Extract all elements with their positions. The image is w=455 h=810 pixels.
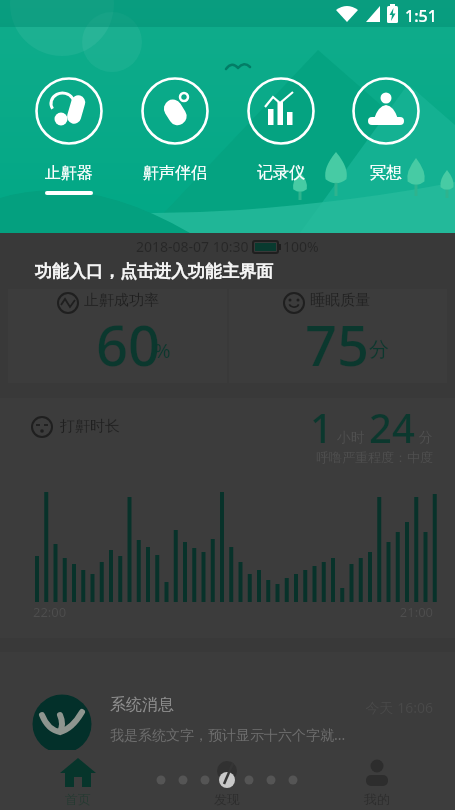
staticText: 止鼾器 xyxy=(45,163,93,183)
button[interactable] xyxy=(197,750,257,810)
button[interactable]: 睡眠质量 xyxy=(229,289,447,383)
staticText: 鼾声伴侣 xyxy=(143,163,207,183)
button[interactable] xyxy=(48,750,108,810)
button[interactable] xyxy=(135,95,215,185)
staticText: 21:00 xyxy=(399,603,433,621)
staticText: 止鼾成功率 xyxy=(84,291,159,310)
staticText: 功能入口，点击进入功能主界面 xyxy=(35,261,273,282)
button[interactable] xyxy=(29,95,109,185)
staticText: 75 xyxy=(305,306,370,382)
staticText: % xyxy=(154,337,171,364)
button[interactable]: 系统消息 xyxy=(0,652,455,750)
staticText: 打鼾时长 xyxy=(60,417,120,436)
button[interactable] xyxy=(241,95,321,185)
button[interactable]: 止鼾成功率 xyxy=(8,289,227,383)
staticText: 100% xyxy=(283,237,319,256)
staticText: 睡眠质量 xyxy=(310,291,370,310)
staticText: 分 xyxy=(415,427,433,446)
staticText: 呼噜严重程度：中度 xyxy=(316,449,433,465)
staticText: 今天 16:06 xyxy=(365,698,433,717)
button[interactable] xyxy=(346,95,426,185)
staticText: 24 xyxy=(369,400,415,454)
staticText: 分 xyxy=(369,337,389,362)
staticText: 我是系统文字，预计显示十六个字就... xyxy=(110,725,346,744)
staticText: 小时 xyxy=(333,427,369,446)
staticText: 发现 xyxy=(214,791,240,807)
staticText: 首页 xyxy=(65,791,91,807)
staticText: 60 xyxy=(96,306,161,382)
button[interactable] xyxy=(347,750,407,810)
staticText: 我的 xyxy=(364,791,390,807)
staticText: 记录仪 xyxy=(257,163,305,183)
staticText: 1 xyxy=(310,400,333,454)
staticText: 22:00 xyxy=(33,603,67,621)
staticText: 冥想 xyxy=(370,163,402,183)
staticText: 2018-08-07 10:30 xyxy=(136,237,253,256)
staticText: 1:51 xyxy=(405,5,437,27)
button[interactable]: 打鼾时长 xyxy=(0,398,455,638)
staticText: 系统消息 xyxy=(110,695,174,715)
